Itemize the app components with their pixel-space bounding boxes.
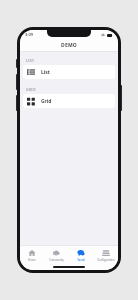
staticText: 3:09 [25,32,33,37]
button[interactable]: List [23,65,115,79]
staticText: Grid [41,98,52,105]
button[interactable]: Home [20,246,44,264]
button[interactable]: Configuration [93,246,118,264]
staticText: Configuration [97,258,115,262]
button[interactable]: Community [44,246,68,264]
staticText: List [41,69,50,76]
staticText: DEMO [61,42,77,49]
button[interactable]: Grid [23,94,115,108]
staticText: GRID [26,87,36,92]
staticText: LIST [26,58,35,63]
staticText: Social [77,258,85,262]
button[interactable]: Social [68,246,93,264]
staticText: Community [49,258,64,262]
staticText: Home [28,258,36,262]
